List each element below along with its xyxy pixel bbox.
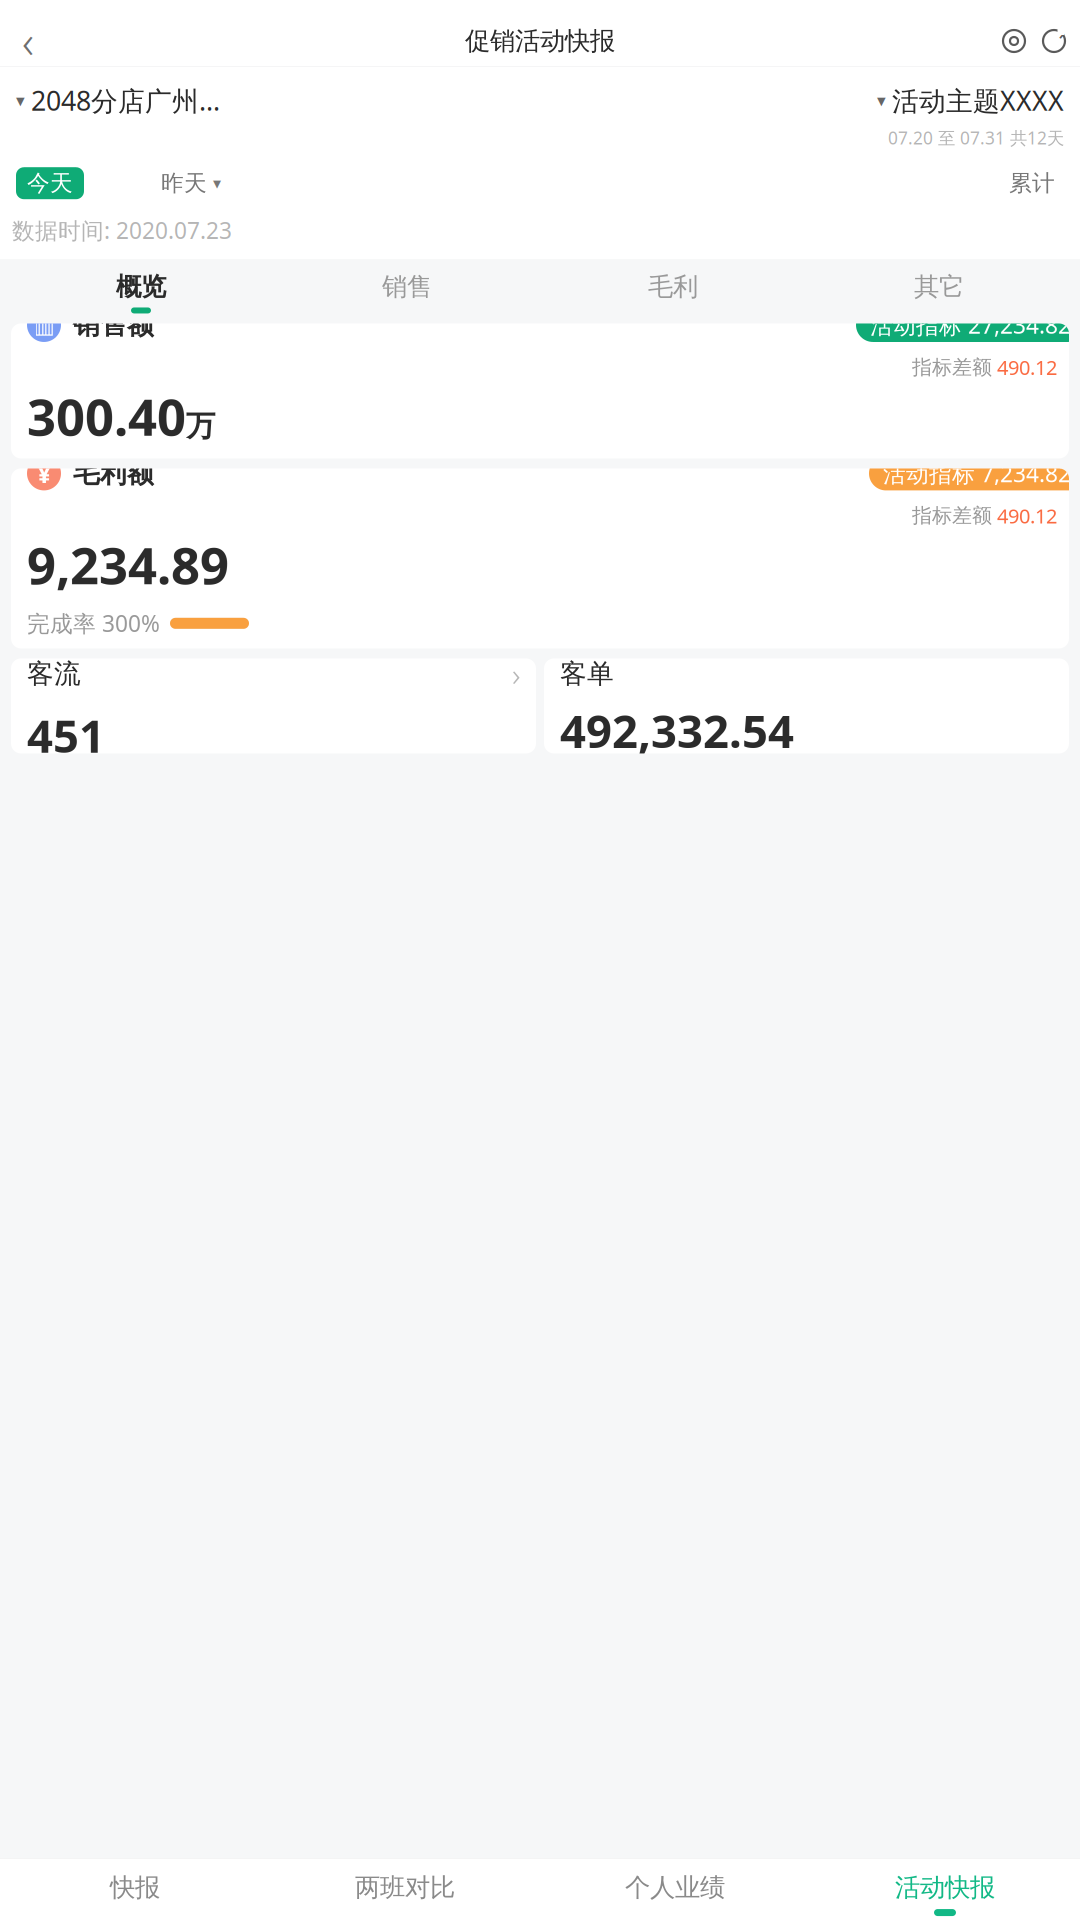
button[interactable]: 概览 [8,271,274,313]
staticText: 9,234.89 [27,531,229,598]
staticText: ‹ [22,11,34,71]
staticText: 概览 [116,271,166,302]
staticText: 昨天 [161,169,207,197]
button[interactable]: 销售 [274,271,540,313]
button[interactable]: 设置 [994,19,1034,63]
staticText: 累计 [1009,169,1055,197]
button[interactable]: ▾ [16,83,220,118]
staticText: › [1058,19,1065,45]
staticText: 2048分店广州... [31,83,220,118]
staticText: 指标差额 [912,355,992,380]
staticText: 490.12 [997,354,1057,381]
button[interactable]: 客流 [11,658,536,753]
staticText: 492,332.54 [560,700,794,760]
staticText: 完成率 300% [27,608,160,638]
staticText: 销售额 [73,309,154,341]
staticText: 促销活动快报 [465,25,615,56]
button[interactable]: 累计 [992,167,1072,199]
button[interactable]: 返回 [6,19,50,63]
staticText: ¥ [37,457,51,490]
button[interactable]: 毛利 [540,271,806,313]
staticText: 万 [186,408,215,444]
staticText: 300.40 [27,382,186,450]
staticText: 毛利额 [73,457,154,490]
button[interactable]: ▾ [877,83,1064,118]
button[interactable]: 刷新 [1034,19,1074,63]
staticText: 07.20 至 07.31 共12天 [888,126,1064,149]
staticText: ▾ [16,91,25,110]
staticText: ▾ [213,174,221,192]
staticText: ▾ [877,91,886,110]
staticText: 活动指标 7,234.82 [883,458,1071,488]
staticText: 两班对比 [355,1872,455,1903]
staticText: 销售 [382,271,432,302]
button[interactable]: 个人业绩 [540,1862,810,1916]
staticText: › [512,653,520,695]
staticText: 个人业绩 [625,1872,725,1903]
button[interactable]: 两班对比 [270,1862,540,1916]
staticText: 490.12 [997,502,1057,529]
staticText: 活动快报 [895,1872,995,1903]
staticText: 毛利率 40.23% [27,646,179,676]
staticText: 完成率 60% [27,460,147,490]
button[interactable]: 今天 [16,167,84,199]
button[interactable]: 快报 [0,1862,270,1916]
button[interactable]: 其它 [806,271,1072,313]
staticText: ▥ [33,312,54,338]
staticText: 客单 [560,657,614,690]
button[interactable]: 活动快报 [810,1862,1080,1916]
staticText: 活动主题XXXX [892,83,1064,118]
button[interactable]: 昨天 [136,167,246,199]
staticText: 活动指标 27,234.82 [870,310,1071,340]
staticText: 数据时间: 2020.07.23 [12,215,232,245]
staticText: 客流 [27,657,81,690]
staticText: 451 [27,705,105,765]
staticText: 其它 [914,271,964,302]
button[interactable]: 客单 [544,658,1069,753]
staticText: 快报 [110,1872,160,1903]
staticText: 今天 [27,169,73,197]
staticText: 指标差额 [912,503,992,528]
staticText: 毛利 [648,271,698,302]
